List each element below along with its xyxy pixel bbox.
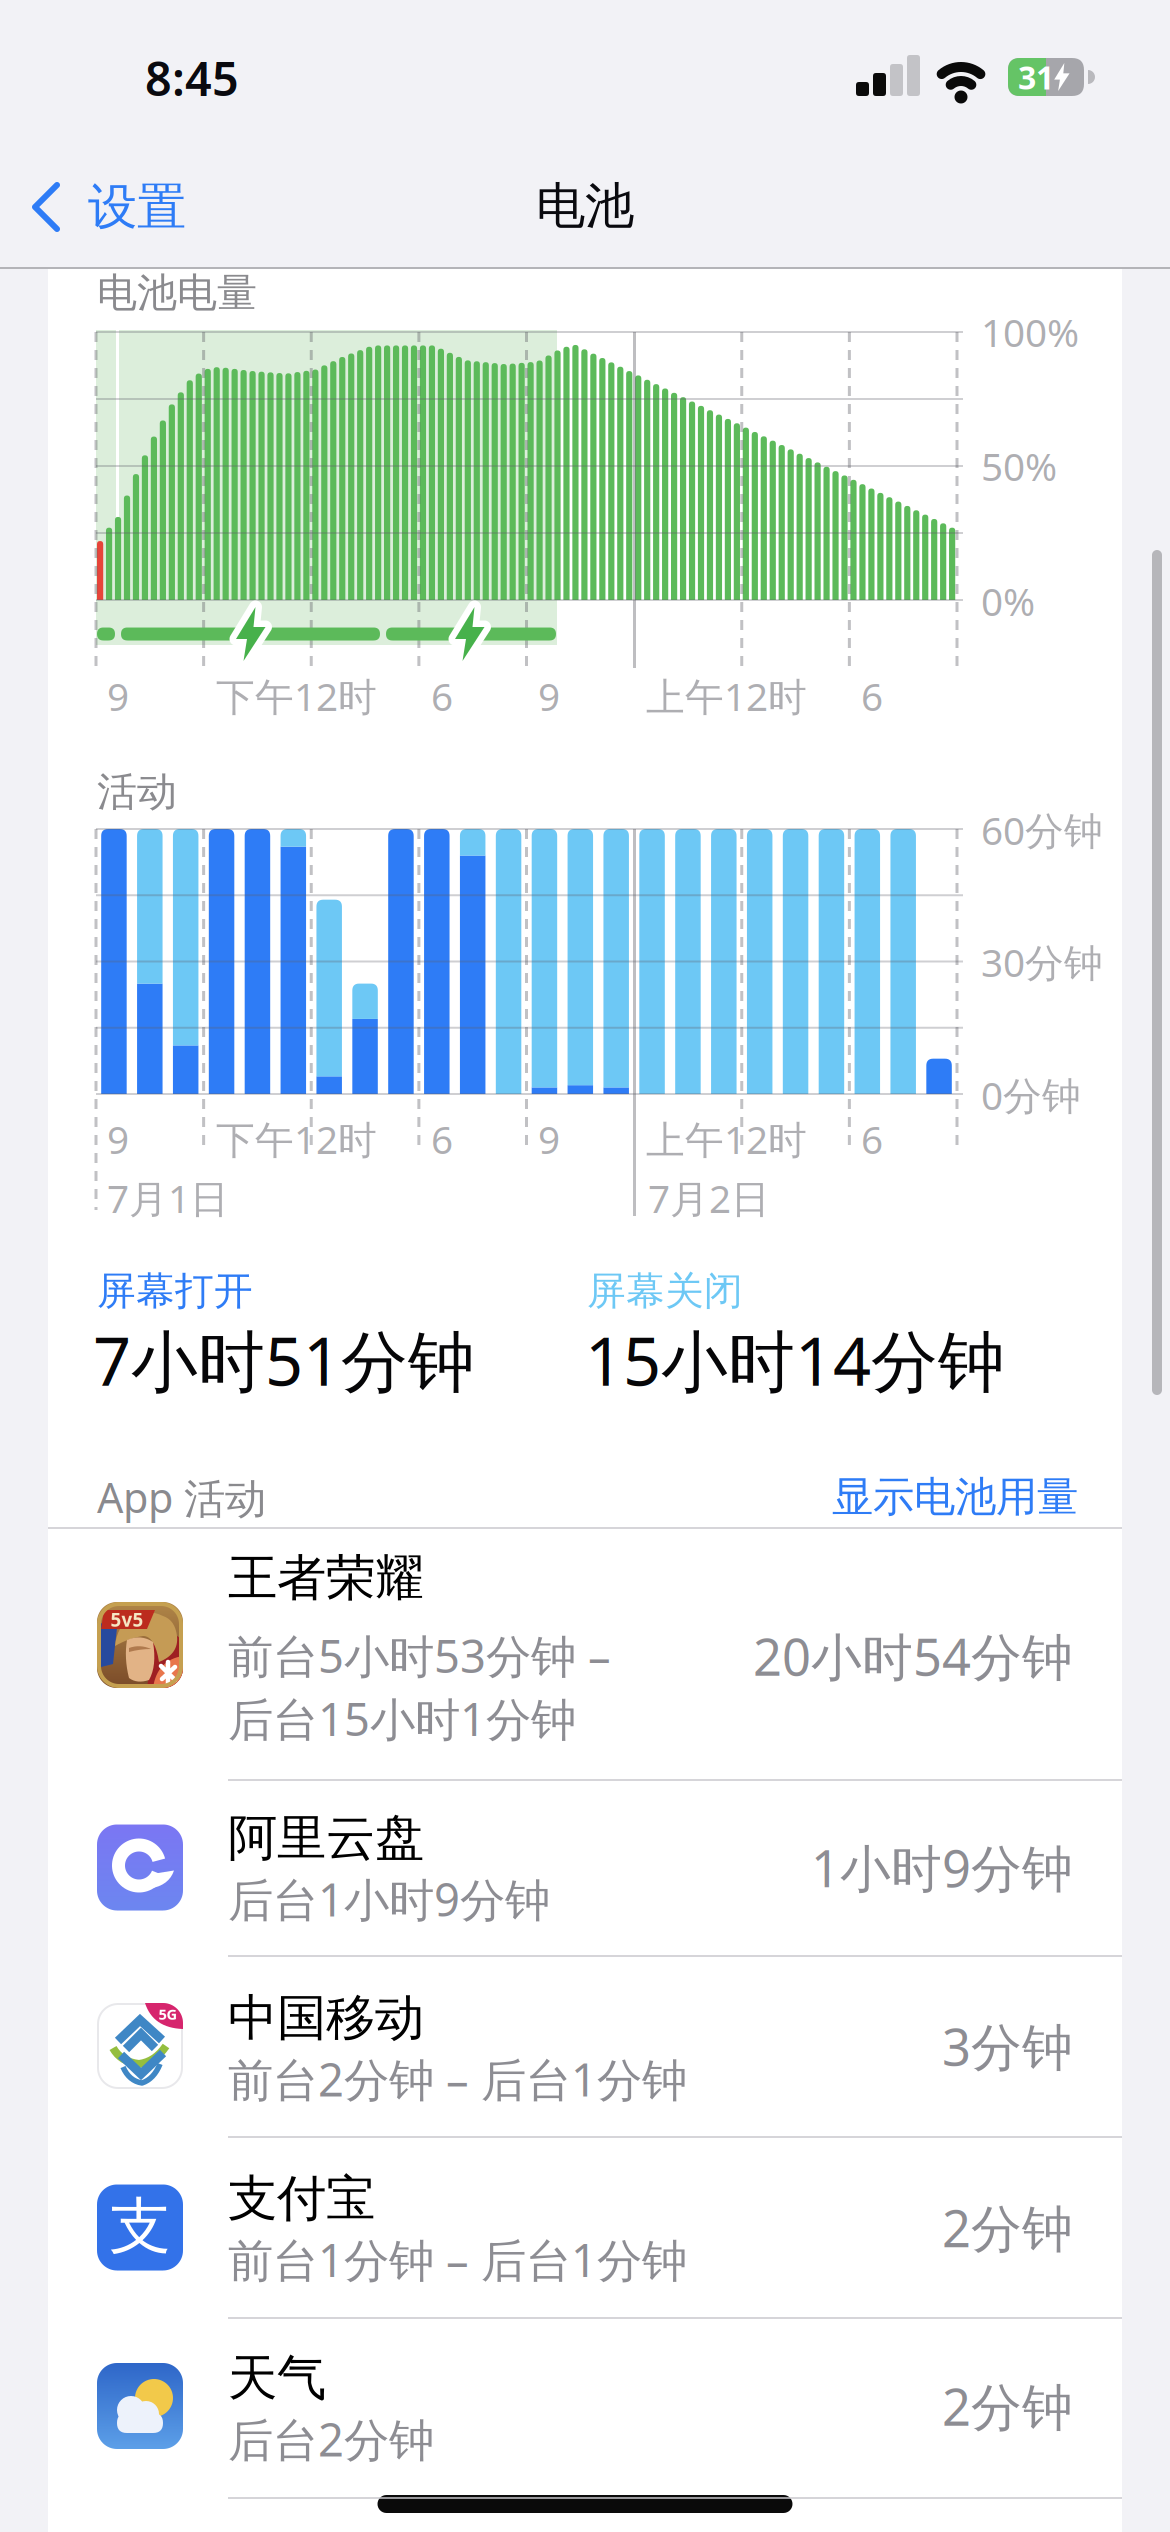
staticText: 屏幕打开 xyxy=(97,1267,253,1315)
staticText: 6 xyxy=(861,1113,883,1165)
button[interactable]: 5v5 xyxy=(0,1528,1170,1779)
staticText: 0% xyxy=(981,575,1035,627)
staticText: 2分钟 xyxy=(942,2372,1073,2440)
staticText: 下午12时 xyxy=(216,670,377,722)
staticText: 9 xyxy=(538,1113,560,1165)
staticText: 后台1小时9分钟 xyxy=(228,1869,550,1929)
staticText: 30分钟 xyxy=(981,936,1103,988)
staticText: 显示电池用量 xyxy=(832,1472,1078,1522)
staticText: 后台2分钟 xyxy=(228,2409,434,2469)
staticText: 前台2分钟 – 后台1分钟 xyxy=(228,2049,687,2109)
staticText: 中国移动 xyxy=(228,1988,424,2048)
button[interactable]: 显示电池用量 xyxy=(0,0,1170,2532)
staticText: 7小时51分钟 xyxy=(93,1316,475,1404)
staticText: 王者荣耀 xyxy=(228,1548,424,1608)
staticText: 屏幕关闭 xyxy=(587,1267,743,1315)
staticText: App 活动 xyxy=(97,1469,266,1524)
staticText: 50% xyxy=(981,440,1057,492)
staticText: 5v5 xyxy=(110,1607,143,1632)
staticText: 6 xyxy=(431,670,453,722)
staticText: 100% xyxy=(981,306,1079,358)
button[interactable]: 5G xyxy=(0,1956,1170,2136)
staticText: 电池电量 xyxy=(97,268,257,317)
staticText: 下午12时 xyxy=(216,1113,377,1165)
staticText: 上午12时 xyxy=(646,670,807,722)
staticText: 2分钟 xyxy=(942,2194,1073,2261)
staticText: 支 xyxy=(109,2189,170,2264)
staticText: 7月1日 xyxy=(107,1172,229,1224)
staticText: 1小时9分钟 xyxy=(811,1834,1073,1901)
staticText: 5G xyxy=(158,2004,177,2024)
staticText: 6 xyxy=(861,670,883,722)
staticText: 9 xyxy=(107,670,129,722)
button[interactable]: 阿里云盘 xyxy=(0,1780,1170,1955)
staticText: 60分钟 xyxy=(981,804,1103,856)
staticText: 9 xyxy=(107,1113,129,1165)
staticText: 后台15小时1分钟 xyxy=(228,1688,576,1749)
button[interactable]: 天气 xyxy=(0,2317,1170,2497)
staticText: 天气 xyxy=(228,2348,326,2408)
staticText: 阿里云盘 xyxy=(228,1808,424,1868)
staticText: 支付宝 xyxy=(228,2168,375,2229)
staticText: 3分钟 xyxy=(942,2012,1073,2080)
staticText: 31 xyxy=(1018,56,1054,98)
staticText: 前台1分钟 – 后台1分钟 xyxy=(228,2229,687,2290)
button[interactable]: 支 xyxy=(0,2137,1170,2317)
staticText: 上午12时 xyxy=(646,1113,807,1165)
staticText: 20小时54分钟 xyxy=(753,1622,1073,1690)
staticText: 电池 xyxy=(536,176,634,236)
staticText: 8:45 xyxy=(145,47,239,109)
staticText: 9 xyxy=(538,670,560,722)
staticText: 0分钟 xyxy=(981,1069,1081,1121)
staticText: 前台5小时53分钟 – xyxy=(228,1625,623,1686)
staticText: 6 xyxy=(431,1113,453,1165)
staticText: 设置 xyxy=(88,177,186,237)
button[interactable]: 设置 xyxy=(0,0,1170,2532)
staticText: 15小时14分钟 xyxy=(585,1316,1005,1404)
staticText: 活动 xyxy=(97,767,177,816)
staticText: 7月2日 xyxy=(648,1172,770,1224)
